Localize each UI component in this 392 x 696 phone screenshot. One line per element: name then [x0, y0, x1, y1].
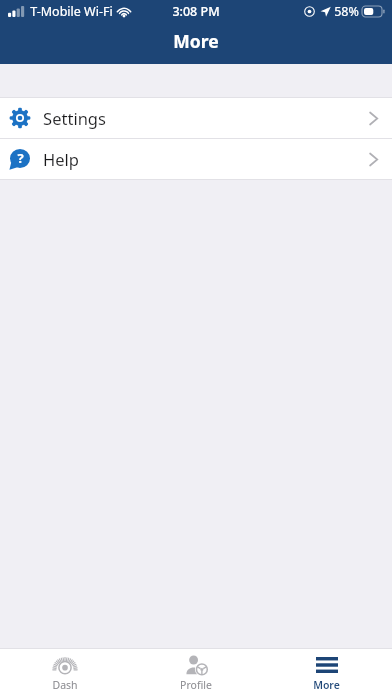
staticText: ?	[17, 149, 24, 167]
staticText: T-Mobile Wi-Fi	[30, 3, 113, 20]
staticText: 3:08 PM	[172, 3, 220, 20]
button[interactable]: ?	[0, 139, 392, 179]
other: Profile	[184, 655, 208, 675]
staticText: Profile	[180, 678, 212, 692]
staticText: More	[313, 678, 340, 692]
staticText: Dash	[52, 678, 78, 692]
staticText: 58%	[334, 3, 359, 20]
button[interactable]: Profile	[130, 649, 261, 696]
staticText: Settings	[43, 107, 106, 129]
button[interactable]: Settings	[0, 98, 392, 138]
staticText: More	[173, 29, 219, 53]
other: More	[316, 657, 338, 673]
button[interactable]: More	[261, 649, 392, 696]
button[interactable]: Dash	[0, 649, 130, 696]
other: Dash	[52, 655, 78, 675]
staticText: Help	[43, 148, 79, 170]
